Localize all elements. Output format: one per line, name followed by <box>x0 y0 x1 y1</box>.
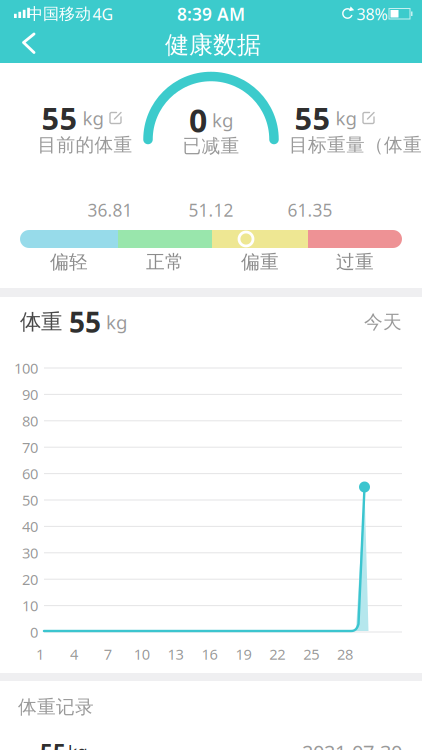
staticText: 4 <box>70 644 78 664</box>
staticText: 10 <box>134 644 150 664</box>
staticText: 20 <box>22 569 38 589</box>
staticText: 今天 <box>364 310 402 333</box>
staticText: 体重 <box>20 309 62 335</box>
staticText: kg <box>82 106 103 130</box>
staticText: 55 <box>62 303 101 341</box>
staticText: 38% <box>356 3 387 25</box>
staticText: 30 <box>22 543 38 563</box>
staticText: 8:39 AM <box>177 2 245 25</box>
staticText: 健康数据 <box>165 30 261 60</box>
staticText: kg <box>101 310 127 334</box>
staticText: 61.35 <box>287 198 332 221</box>
staticText: kg <box>335 106 356 130</box>
staticText: 目前的体重 <box>37 133 132 156</box>
staticText: 过重 <box>336 250 374 273</box>
staticText: 1 <box>36 644 44 664</box>
staticText: 2021-07-30 <box>302 739 402 750</box>
staticText: 中国移动 <box>27 4 91 24</box>
staticText: 7 <box>104 644 112 664</box>
button[interactable]: 55 <box>294 98 375 138</box>
staticText: 0 <box>189 99 207 141</box>
staticText: 0 <box>30 622 38 642</box>
staticText: 22 <box>269 644 285 664</box>
staticText: 目标重量（体重 <box>289 133 422 156</box>
staticText: 51.12 <box>188 198 233 221</box>
staticText: 正常 <box>146 250 184 273</box>
staticText: 55 <box>41 98 77 138</box>
staticText: 100 <box>14 358 38 378</box>
staticText: 90 <box>22 385 38 404</box>
staticText: kg <box>68 740 88 750</box>
button[interactable]: 55 <box>0 740 422 750</box>
staticText: 偏重 <box>241 250 279 273</box>
staticText: 25 <box>303 644 319 664</box>
staticText: 偏轻 <box>50 250 88 273</box>
staticText: 80 <box>22 411 38 431</box>
staticText: 36.81 <box>87 198 132 221</box>
staticText: kg <box>212 108 233 132</box>
staticText: 40 <box>22 517 38 536</box>
staticText: 70 <box>22 437 38 457</box>
staticText: 28 <box>337 644 353 664</box>
staticText: 已减重 <box>182 134 239 157</box>
staticText: 4G <box>92 3 113 25</box>
staticText: 60 <box>22 464 38 483</box>
staticText: 10 <box>22 596 38 615</box>
staticText: 13 <box>168 644 184 664</box>
staticText: 16 <box>201 644 217 664</box>
staticText: 55 <box>294 98 330 138</box>
button[interactable]: 55 <box>41 98 122 138</box>
button[interactable] <box>10 28 54 60</box>
staticText: 体重记录 <box>18 695 94 718</box>
staticText: 19 <box>235 644 251 664</box>
staticText: 50 <box>22 490 38 510</box>
staticText: 55 <box>40 737 66 750</box>
